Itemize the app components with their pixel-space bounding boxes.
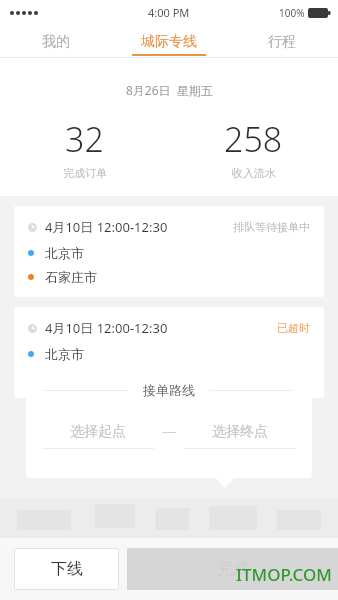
staticText: 选择起点	[70, 423, 126, 441]
staticText: 258	[224, 116, 283, 162]
staticText: 下线	[51, 559, 83, 579]
staticText: 石家庄市	[45, 269, 97, 285]
button[interactable]: 完成	[127, 548, 338, 590]
staticText: 行程	[268, 33, 296, 51]
button[interactable]: 行程	[225, 25, 338, 58]
staticText: 北京市	[45, 346, 84, 362]
staticText: 4月10日 12:00-12:30	[45, 218, 168, 236]
button[interactable]: 下线	[14, 548, 119, 590]
button[interactable]: 我的	[0, 25, 112, 58]
staticText: 完成订单	[63, 166, 107, 180]
staticText: ITMOP.COM	[236, 563, 332, 586]
button[interactable]: 4月10日 12:00-12:30	[14, 206, 324, 297]
staticText: 城际专线	[141, 33, 197, 51]
staticText: 我的	[42, 33, 70, 51]
staticText: 排队等待接单中	[233, 220, 310, 234]
staticText: 32	[65, 116, 104, 162]
button[interactable]: 选择终点	[184, 423, 296, 449]
staticText: 完成	[217, 559, 249, 579]
button[interactable]: 城际专线	[112, 25, 225, 58]
button[interactable]: 4月10日 12:00-12:30	[14, 307, 324, 398]
staticText: 北京市	[45, 245, 84, 261]
staticText: 8月26日 星期五	[126, 82, 213, 98]
staticText: 已超时	[277, 321, 310, 335]
staticText: 收入流水	[232, 166, 276, 180]
staticText: 接单路线	[143, 382, 195, 398]
staticText: 4:00 PM	[148, 5, 190, 20]
staticText: 100%	[279, 6, 305, 20]
staticText: 选择终点	[212, 423, 268, 441]
staticText: 4月10日 12:00-12:30	[45, 319, 168, 337]
button[interactable]: 选择起点	[42, 423, 154, 449]
